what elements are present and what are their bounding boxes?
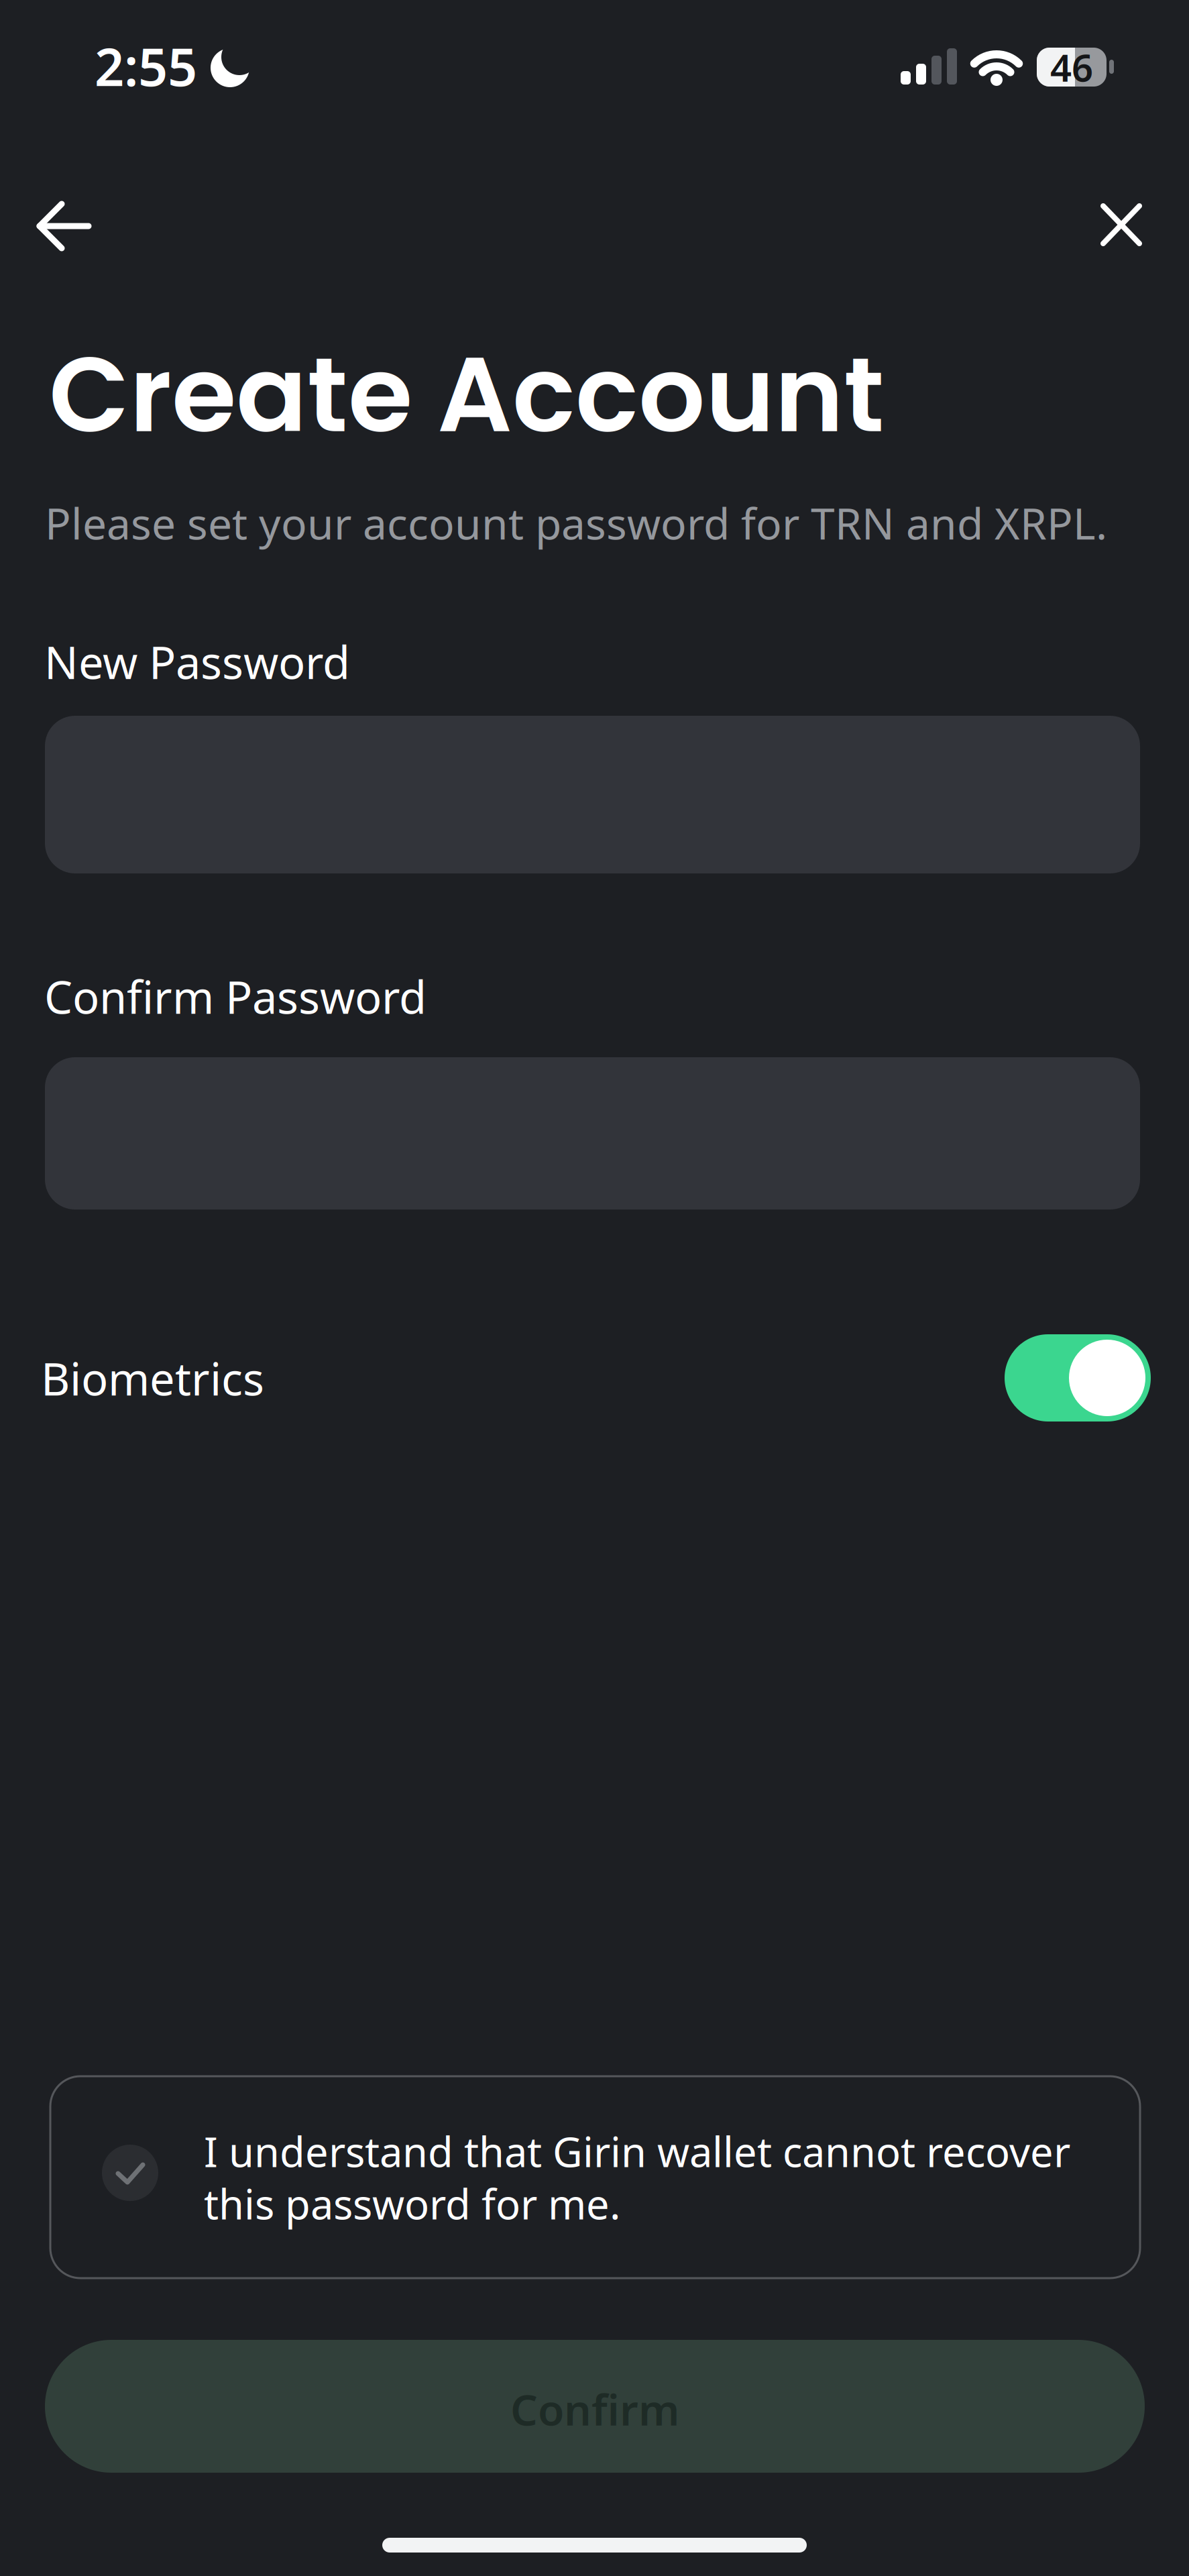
staticText: 2:55: [95, 32, 197, 100]
staticText: New Password: [44, 632, 350, 691]
button[interactable]: Confirm: [45, 2340, 1145, 2473]
staticText: Confirm Password: [44, 967, 427, 1026]
button[interactable]: Biometrics: [1005, 1334, 1151, 1421]
staticText: Biometrics: [41, 1348, 264, 1408]
button[interactable]: Close: [1084, 187, 1158, 262]
staticText: I understand that Girin wallet cannot re…: [204, 2124, 1070, 2178]
staticText: this password for me.: [204, 2176, 620, 2231]
staticText: Create Account: [49, 321, 885, 468]
staticText: Please set your account password for TRN…: [45, 494, 1107, 551]
button[interactable]: I understand that Girin wallet cannot re…: [50, 2076, 1140, 2278]
button[interactable]: Back: [21, 185, 107, 267]
staticText: 46: [1050, 42, 1093, 92]
staticText: Confirm: [510, 2380, 679, 2437]
